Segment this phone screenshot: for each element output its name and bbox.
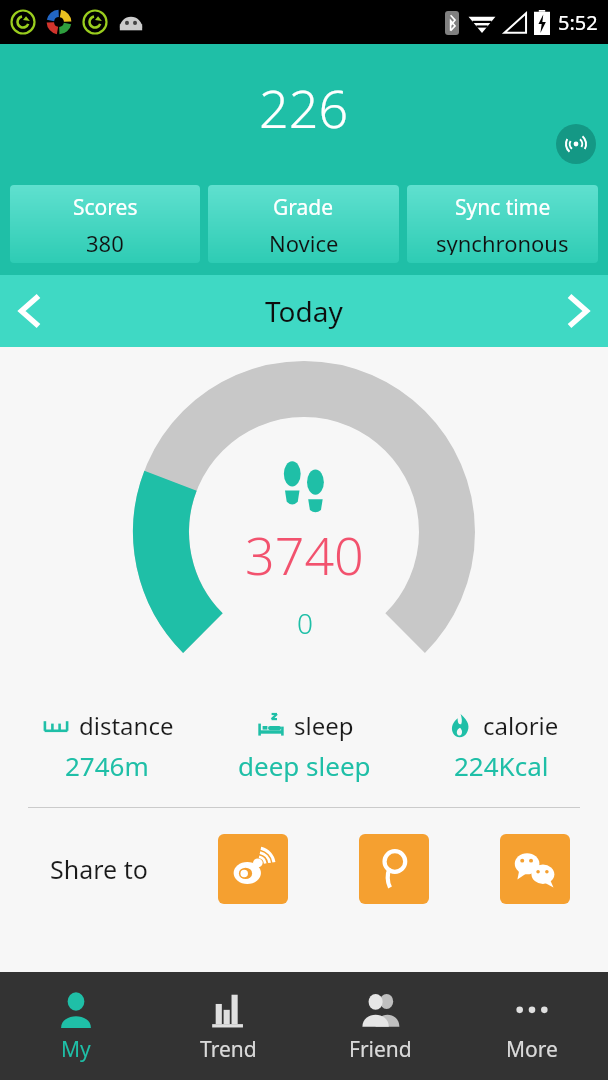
staticText: My — [61, 1035, 91, 1064]
button[interactable]: Sync time — [407, 185, 598, 263]
staticText: Trend — [200, 1035, 257, 1064]
staticText: Today — [265, 292, 343, 330]
staticText: 2746m — [65, 748, 149, 783]
button[interactable]: Previous day — [0, 280, 62, 342]
button[interactable]: My — [0, 972, 152, 1080]
staticText: calorie — [483, 709, 559, 742]
button[interactable]: Share to WeChat — [500, 834, 570, 904]
staticText: More — [506, 1035, 558, 1064]
staticText: Sync time — [455, 193, 551, 222]
staticText: 380 — [86, 228, 124, 255]
staticText: 3740 — [245, 519, 364, 590]
staticText: Scores — [73, 193, 138, 222]
button[interactable]: Sync — [556, 124, 596, 164]
button[interactable]: distance — [8, 709, 206, 783]
staticText: distance — [79, 709, 174, 742]
staticText: 0 — [297, 604, 313, 642]
staticText: Share to — [50, 852, 148, 886]
staticText: Novice — [269, 228, 339, 255]
staticText: synchronous — [436, 228, 569, 255]
button[interactable]: sleep — [206, 709, 403, 783]
button[interactable]: Scores — [10, 185, 200, 263]
button[interactable]: Next day — [546, 280, 608, 342]
staticText: deep sleep — [238, 748, 371, 783]
staticText: Grade — [273, 193, 334, 222]
button[interactable]: Share to Weibo — [218, 834, 288, 904]
button[interactable]: Share to Pinterest — [359, 834, 429, 904]
button[interactable]: More — [456, 972, 608, 1080]
staticText: Friend — [349, 1035, 412, 1064]
button[interactable]: Grade — [208, 185, 399, 263]
button[interactable]: Trend — [152, 972, 304, 1080]
staticText: 226 — [259, 72, 349, 143]
button[interactable]: Friend — [304, 972, 456, 1080]
staticText: 224Kcal — [454, 748, 549, 783]
staticText: sleep — [294, 709, 354, 742]
staticText: 5:52 — [558, 9, 598, 36]
button[interactable]: calorie — [403, 709, 600, 783]
